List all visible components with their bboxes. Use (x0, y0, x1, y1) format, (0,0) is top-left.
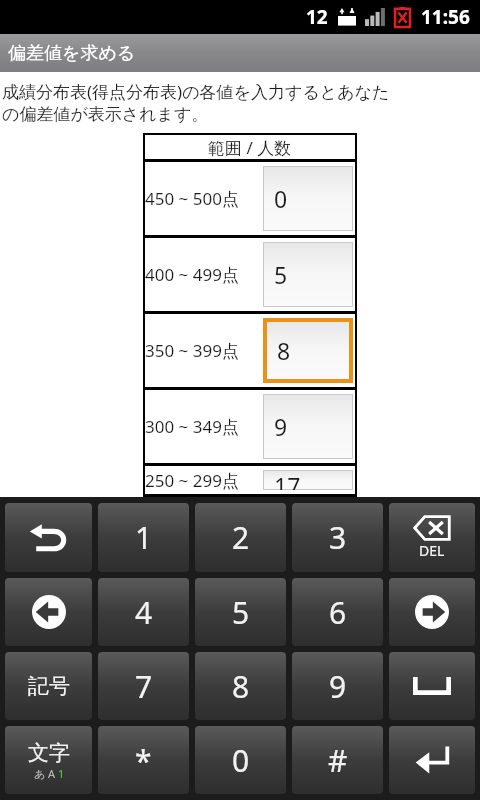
staticText: # (328, 740, 348, 781)
button[interactable]: Delete (389, 503, 475, 572)
staticText: 1 (58, 766, 65, 781)
staticText: 4 (135, 592, 153, 633)
button[interactable]: # (292, 726, 383, 794)
staticText: 偏差値を求める (8, 42, 136, 65)
button[interactable]: 偏差値を求める (0, 34, 480, 72)
button[interactable]: Enter (389, 726, 475, 794)
staticText: あ (34, 767, 46, 781)
staticText: 0 (274, 183, 288, 214)
staticText: 8 (232, 666, 250, 707)
staticText: 5 (232, 592, 250, 633)
staticText: 7 (135, 666, 153, 707)
staticText: 12 (306, 4, 328, 30)
button[interactable]: 5 (195, 578, 286, 646)
staticText: 6 (329, 592, 347, 633)
staticText: 3 (329, 517, 347, 558)
button[interactable]: 1 (98, 503, 189, 572)
staticText: * (135, 740, 152, 781)
staticText: 350 ~ 399点 (145, 339, 239, 362)
staticText: 記号 (28, 673, 70, 699)
button[interactable]: 450 ~ 500点 (145, 162, 355, 235)
staticText: 9 (274, 411, 288, 442)
button[interactable]: 0 (195, 726, 286, 794)
button[interactable]: Move cursor right (389, 578, 475, 646)
button[interactable]: 文字 (5, 726, 92, 794)
button[interactable]: 4 (98, 578, 189, 646)
button[interactable]: 記号 (5, 652, 92, 720)
staticText: 文字 (28, 740, 70, 766)
button[interactable]: 7 (98, 652, 189, 720)
staticText: 9 (329, 666, 347, 707)
button[interactable]: 250 ~ 299点 (145, 466, 355, 494)
button[interactable]: Undo (5, 503, 92, 572)
button[interactable]: 350 ~ 399点 (145, 314, 355, 387)
staticText: 範囲 / 人数 (208, 136, 292, 159)
staticText: 450 ~ 500点 (145, 187, 239, 210)
staticText: 400 ~ 499点 (145, 263, 239, 286)
button[interactable]: 6 (292, 578, 383, 646)
staticText: 成績分布表(得点分布表)の各値を入力するとあなた の偏差値が表示されます。 (2, 80, 390, 125)
button[interactable]: 8 (195, 652, 286, 720)
button[interactable]: Move cursor left (5, 578, 92, 646)
button[interactable]: 9 (292, 652, 383, 720)
staticText: 300 ~ 349点 (145, 415, 239, 438)
button[interactable]: 3 (292, 503, 383, 572)
button[interactable]: 300 ~ 349点 (145, 390, 355, 463)
staticText: A (48, 766, 56, 781)
staticText: 11:56 (421, 4, 470, 30)
staticText: 1 (135, 517, 153, 558)
staticText: 2 (232, 517, 250, 558)
staticText: 5 (274, 259, 288, 290)
staticText: 0 (232, 740, 250, 781)
staticText: 250 ~ 299点 (145, 469, 239, 492)
staticText: 8 (277, 335, 291, 366)
button[interactable]: 400 ~ 499点 (145, 238, 355, 311)
button[interactable]: 2 (195, 503, 286, 572)
staticText: DEL (419, 541, 445, 560)
button[interactable]: * (98, 726, 189, 794)
button[interactable]: Space (389, 652, 475, 720)
staticText: 17 (274, 470, 301, 490)
